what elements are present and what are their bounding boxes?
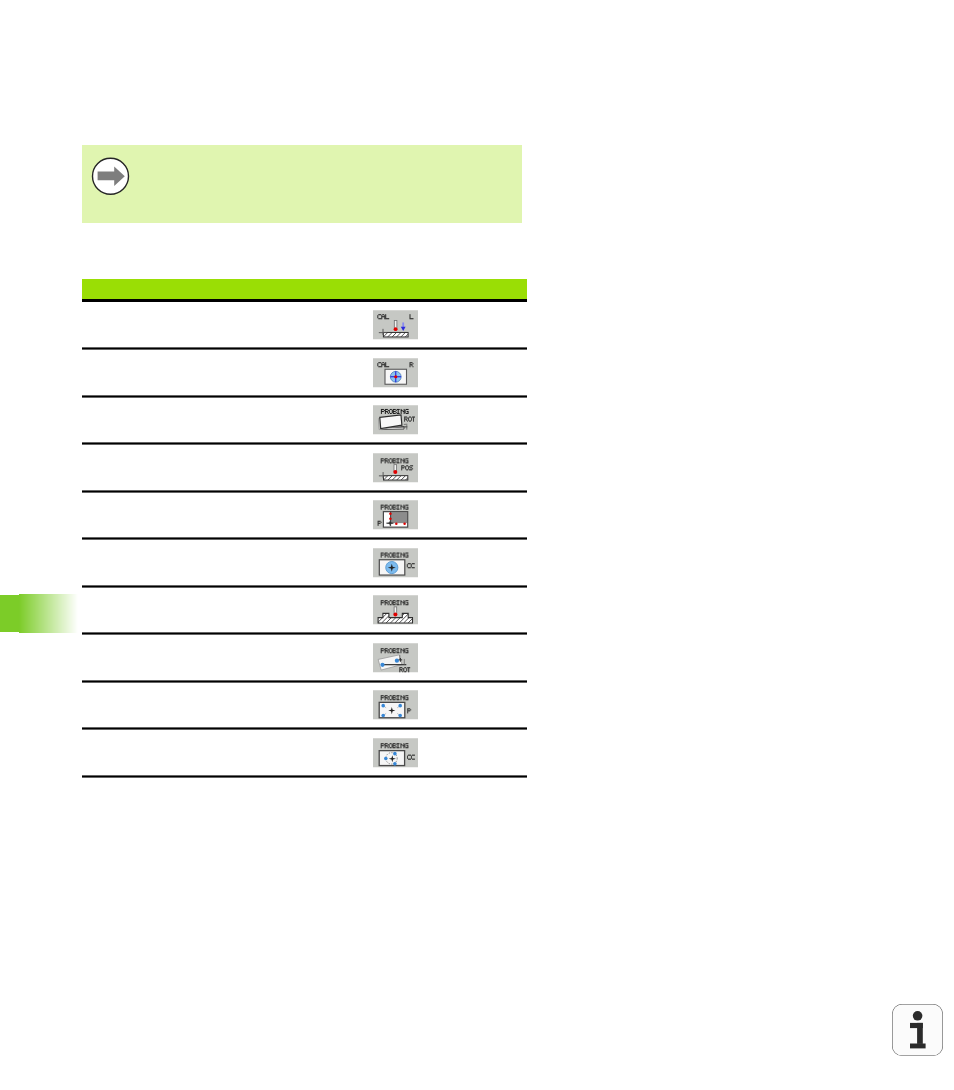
- button[interactable]: Note: [82, 145, 522, 223]
- button[interactable]: Calibrate stylus length: [82, 301, 527, 349]
- button[interactable]: Probing a slot: [82, 586, 527, 634]
- button[interactable]: Probing rotation with two points: [82, 634, 527, 682]
- button[interactable]: Probing a bolt hole circle centre: [82, 729, 527, 777]
- button[interactable]: Probing a plane with four points: [82, 681, 527, 729]
- button[interactable]: Probing a position: [82, 444, 527, 492]
- button[interactable]: Probing rotation of a plane: [82, 396, 527, 444]
- button[interactable]: Probing a corner: [82, 491, 527, 539]
- button[interactable]: Information: [892, 1004, 943, 1056]
- button[interactable]: Probing a circle centre: [82, 539, 527, 587]
- button[interactable]: Calibrate stylus radius: [82, 349, 527, 397]
